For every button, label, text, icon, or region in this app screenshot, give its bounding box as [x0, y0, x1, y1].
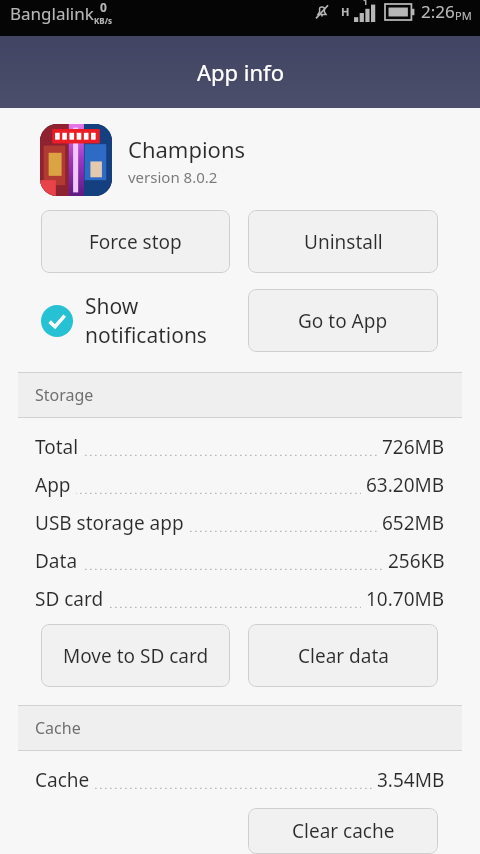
- button[interactable]: Total: [0, 428, 480, 466]
- staticText: Data: [35, 548, 78, 574]
- staticText: 3.54MB: [377, 767, 445, 793]
- button[interactable]: Move to SD card: [41, 624, 230, 687]
- staticText: 726MB: [382, 434, 445, 460]
- staticText: 10.70MB: [366, 586, 445, 612]
- button[interactable]: Show notifications: [41, 289, 230, 352]
- staticText: Champions: [128, 134, 246, 164]
- staticText: Total: [35, 434, 79, 460]
- staticText: 2:26: [421, 0, 455, 23]
- staticText: App info: [197, 57, 284, 87]
- staticText: Move to SD card: [63, 643, 209, 669]
- button[interactable]: SD card: [0, 580, 480, 618]
- staticText: Clear data: [298, 643, 389, 669]
- staticText: Clear cache: [292, 818, 395, 844]
- button[interactable]: Uninstall: [248, 210, 438, 273]
- staticText: 63.20MB: [366, 472, 445, 498]
- staticText: Uninstall: [304, 229, 383, 255]
- other: Show notifications: [41, 305, 73, 337]
- staticText: KB/s: [94, 15, 112, 26]
- staticText: Banglalink: [10, 2, 94, 25]
- staticText: Cache: [35, 767, 90, 793]
- button[interactable]: Force stop: [41, 210, 230, 273]
- button[interactable]: Go to App: [248, 289, 438, 352]
- staticText: Cache: [35, 717, 81, 739]
- staticText: version 8.0.2: [128, 167, 218, 187]
- button[interactable]: Clear data: [248, 624, 438, 687]
- staticText: 1: [363, 0, 368, 7]
- staticText: notifications: [85, 321, 207, 350]
- staticText: Force stop: [89, 229, 182, 255]
- staticText: H: [341, 4, 350, 19]
- button[interactable]: App: [0, 466, 480, 504]
- staticText: 256KB: [388, 548, 445, 574]
- staticText: App: [35, 472, 71, 498]
- staticText: Show: [85, 292, 139, 321]
- button[interactable]: Clear cache: [248, 808, 438, 854]
- button[interactable]: Cache: [0, 761, 480, 799]
- button[interactable]: Data: [0, 542, 480, 580]
- staticText: PM: [455, 8, 472, 23]
- staticText: SD card: [35, 586, 104, 612]
- button[interactable]: USB storage app: [0, 504, 480, 542]
- staticText: Go to App: [298, 308, 388, 334]
- staticText: Storage: [35, 384, 94, 406]
- staticText: 652MB: [382, 510, 445, 536]
- staticText: 0: [100, 0, 107, 15]
- staticText: USB storage app: [35, 510, 184, 536]
